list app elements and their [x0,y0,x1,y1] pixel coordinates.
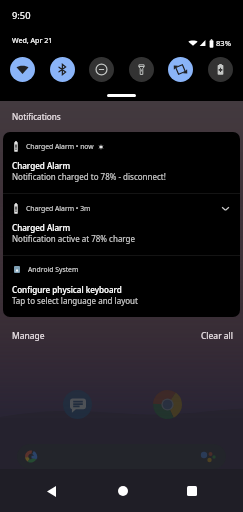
staticText: Charged Alarm [12,160,71,171]
button[interactable]: Back [36,476,66,506]
button[interactable]: Chrome [153,390,182,419]
staticText: Wed, Apr 21 [12,35,53,45]
button[interactable]: Home [108,476,138,506]
staticText: 9:50 [12,9,31,22]
staticText: 83% [216,38,231,48]
staticText: Configure physical keyboard [12,284,122,295]
button[interactable]: Manage [8,327,49,345]
staticText: Notifications [12,111,61,122]
staticText: Charged Alarm • 3m [26,204,91,213]
button[interactable]: Recents [177,476,207,506]
button[interactable]: Auto rotate [168,57,193,82]
button[interactable]: Wi-Fi [10,57,35,82]
button[interactable]: Flashlight [129,57,154,82]
button[interactable]: Android System [3,256,240,317]
button[interactable]: Charged Alarm • 3m [3,194,240,255]
button[interactable]: Do not disturb [89,57,114,82]
button[interactable]: Clear all [197,327,238,345]
staticText: Notification active at 78% charge [12,233,236,244]
staticText: Notification charged to 78% - disconnect… [12,171,236,182]
button[interactable]: Search [17,444,226,469]
button[interactable]: Messages [63,390,92,419]
button[interactable]: Battery Saver [208,57,233,82]
staticText: Clear all [201,330,234,342]
staticText: Manage [12,330,45,342]
staticText: Charged Alarm • now [26,142,94,151]
staticText: Charged Alarm [12,222,71,233]
button[interactable]: Charged Alarm • now [3,132,240,193]
staticText: Android System [28,265,79,274]
staticText: Tap to select language and layout [12,295,236,306]
button[interactable]: Bluetooth [50,57,75,82]
